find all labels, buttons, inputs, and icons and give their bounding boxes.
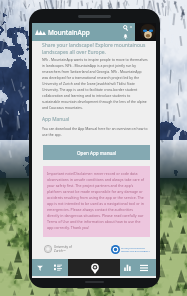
button[interactable]: Open App manual bbox=[43, 145, 150, 160]
button[interactable]: Map bbox=[88, 261, 101, 275]
staticText: NFk - MountainApp wants to inspire peopl… bbox=[42, 57, 148, 110]
button[interactable]: Profile bbox=[140, 24, 156, 40]
staticText: Share your landscape! Explore mountainou… bbox=[42, 42, 148, 55]
staticText: Open App manual bbox=[77, 150, 117, 156]
button[interactable]: Statistics bbox=[121, 259, 133, 276]
button[interactable]: Notifications bbox=[121, 32, 130, 40]
staticText: University of Zurichᵁᴴ bbox=[54, 245, 72, 253]
button[interactable]: Menu bbox=[138, 259, 150, 276]
staticText: App Manual bbox=[42, 116, 70, 123]
button[interactable]: Search bbox=[121, 24, 130, 32]
staticText: You can download the App Manual here for… bbox=[42, 126, 148, 137]
staticText: Important note/Disclaimer: never record … bbox=[47, 171, 146, 230]
staticText: MountainApp bbox=[48, 28, 90, 37]
button[interactable]: List bbox=[52, 259, 64, 276]
staticText: IVANE JAVAKHISHVILI TBILISI STATE UNIVER… bbox=[121, 246, 151, 252]
button[interactable]: Filter bbox=[34, 259, 46, 276]
